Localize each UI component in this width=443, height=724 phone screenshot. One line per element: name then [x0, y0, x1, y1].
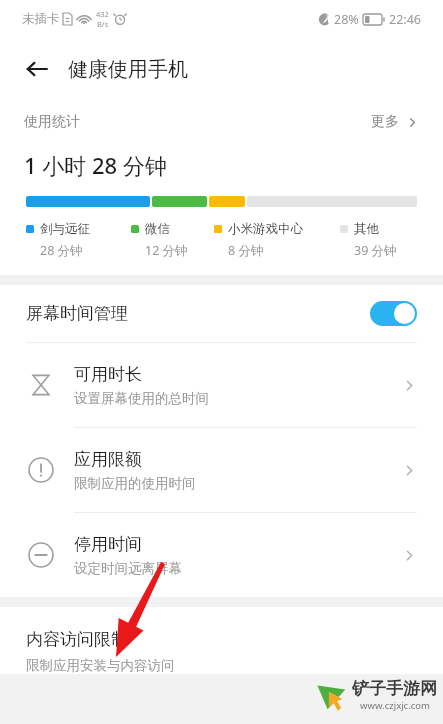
staticText: 内容访问限制	[26, 629, 128, 650]
staticText: 未插卡	[22, 11, 60, 27]
button[interactable]: 应用限额	[0, 428, 443, 512]
staticText: www.czjxjc.com	[360, 699, 430, 712]
staticText: 39 分钟	[354, 242, 397, 259]
staticText: 剑与远征	[40, 221, 90, 237]
staticText: 1 小时 28 分钟	[24, 150, 167, 180]
button[interactable]: 返回	[20, 52, 54, 86]
staticText: 可用时长	[74, 364, 142, 385]
staticText: 使用统计	[24, 113, 80, 131]
staticText: 28 分钟	[40, 242, 83, 259]
staticText: 限制应用的使用时间	[74, 475, 196, 492]
staticText: 限制应用安装与内容访问	[26, 657, 175, 674]
staticText: 铲子手游网	[352, 678, 437, 699]
staticText: 12 分钟	[145, 242, 188, 259]
staticText: 更多	[371, 113, 399, 131]
staticText: 8 分钟	[228, 242, 264, 259]
button[interactable]: 可用时长	[0, 343, 443, 427]
staticText: B/s	[97, 19, 109, 29]
button[interactable]: 使用统计	[0, 100, 443, 144]
staticText: 应用限额	[74, 449, 142, 470]
staticText: 停用时间	[74, 534, 142, 555]
staticText: 屏幕时间管理	[26, 303, 128, 324]
staticText: 22:46	[389, 11, 421, 28]
staticText: 健康使用手机	[68, 57, 188, 82]
staticText: 小米游戏中心	[228, 221, 303, 237]
button[interactable]: 屏幕时间管理开关	[370, 301, 417, 326]
button[interactable]: 内容访问限制	[0, 607, 443, 674]
staticText: 设定时间远离屏幕	[74, 560, 182, 577]
staticText: 微信	[145, 221, 170, 237]
staticText: 其他	[354, 221, 379, 237]
button[interactable]: 停用时间	[0, 513, 443, 597]
staticText: 432	[96, 9, 109, 19]
button[interactable]: 屏幕时间管理	[0, 285, 443, 342]
staticText: 28%	[334, 11, 359, 28]
staticText: 设置屏幕使用的总时间	[74, 390, 209, 407]
